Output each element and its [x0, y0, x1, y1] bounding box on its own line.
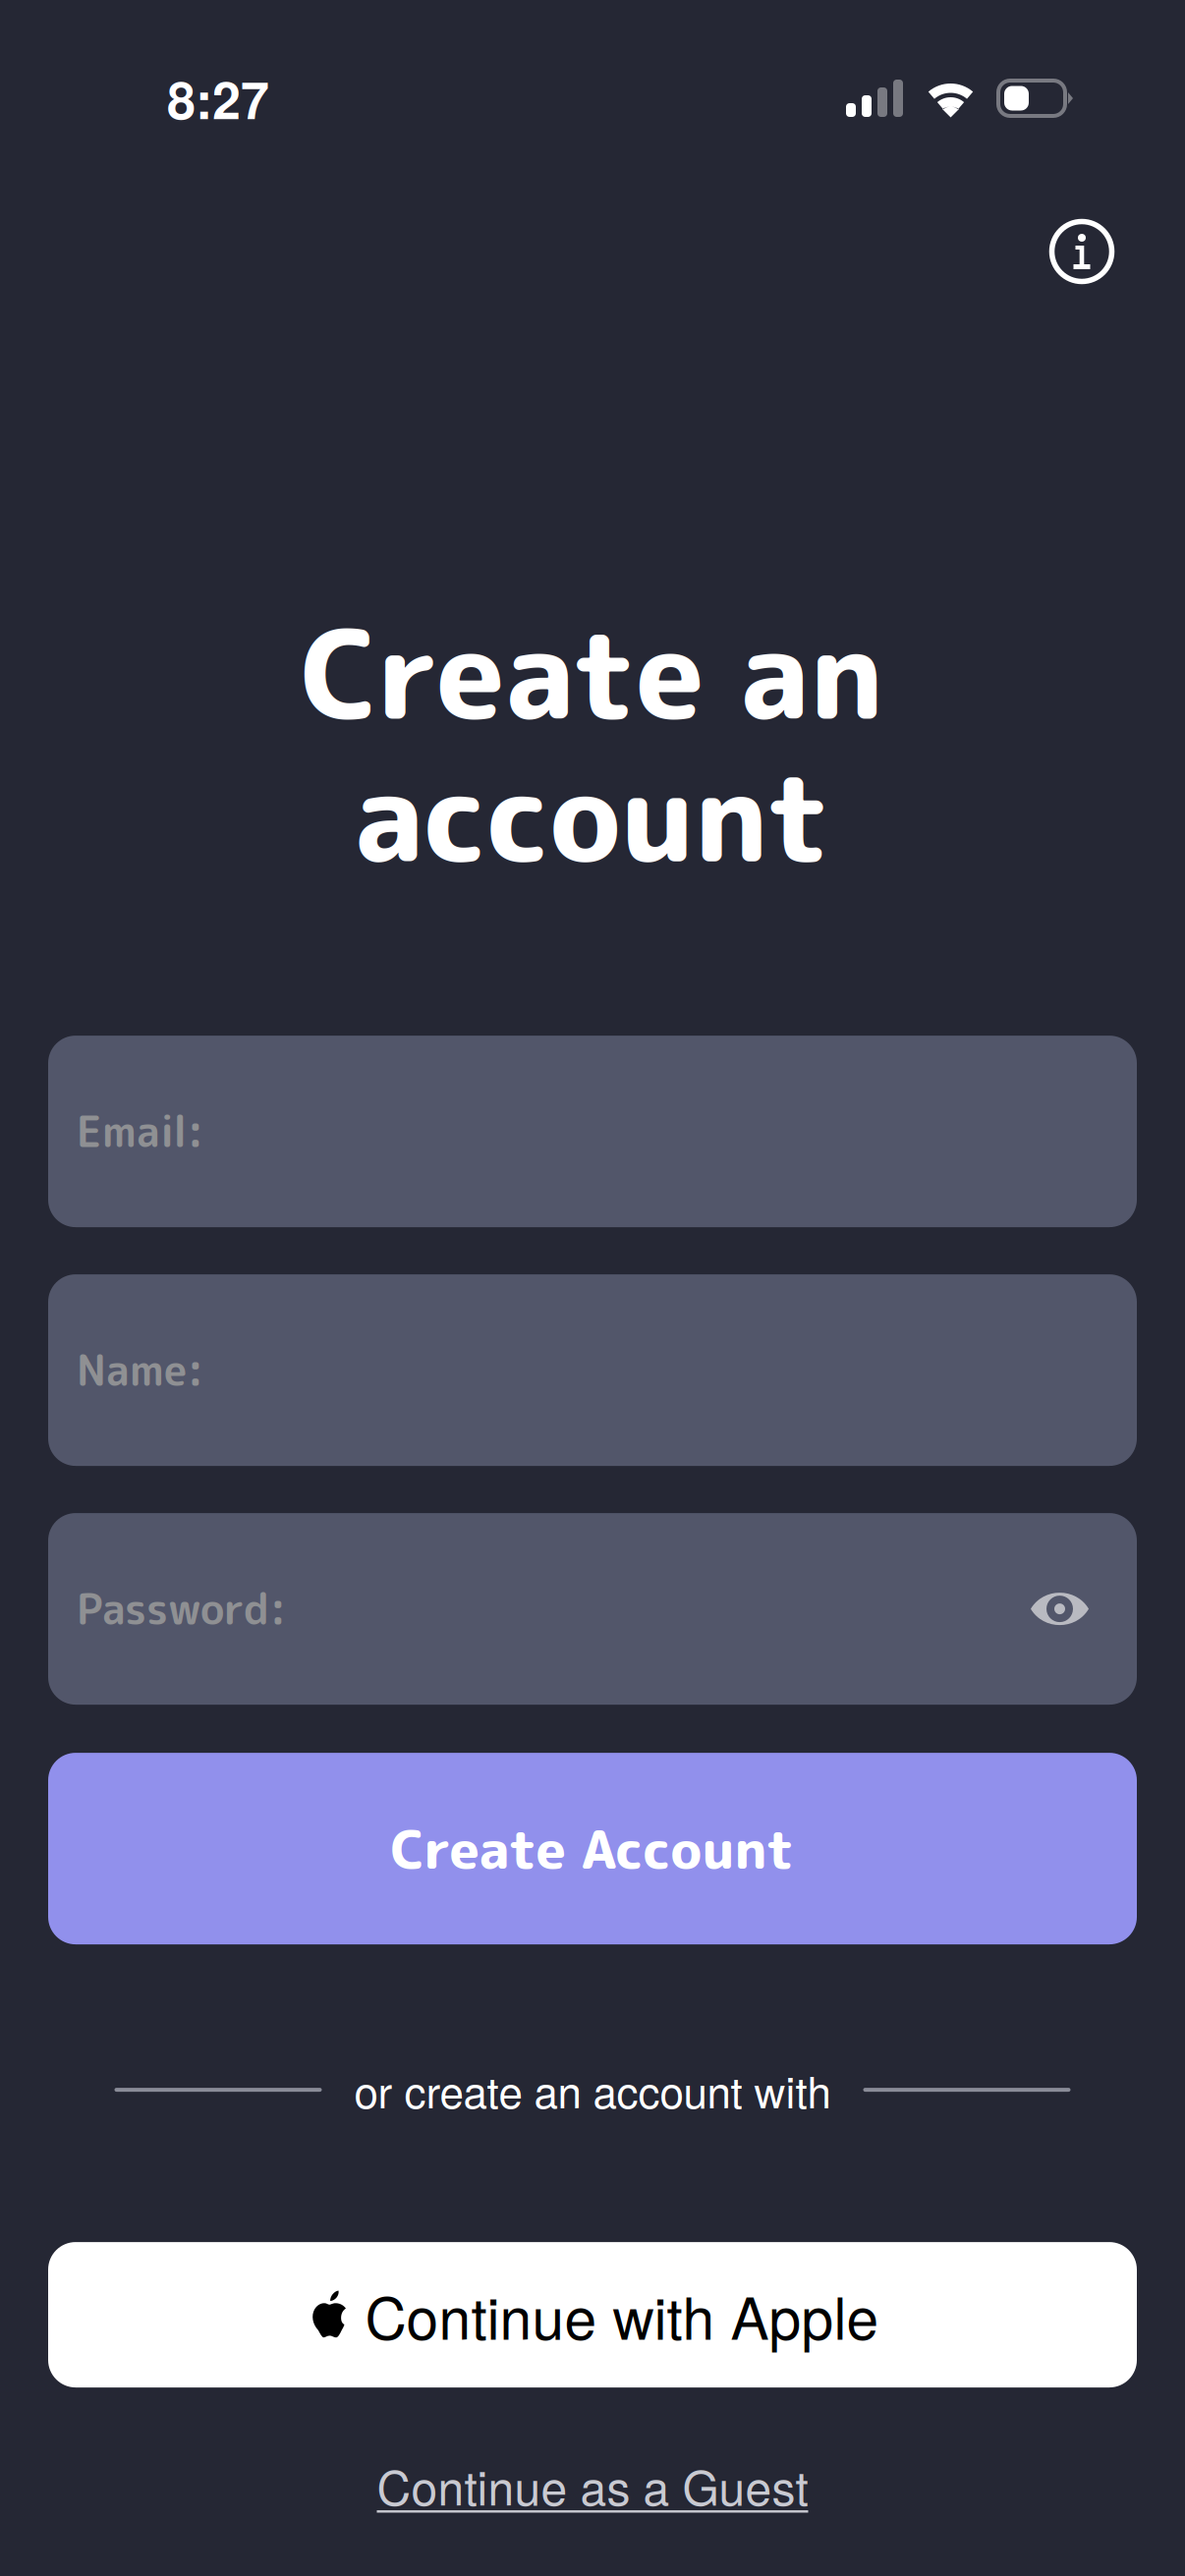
staticText: Create Account	[391, 1812, 794, 1886]
button[interactable]: Continue as a Guest	[377, 2451, 808, 2519]
staticText: 8:27	[167, 62, 269, 135]
staticText: Continue with Apple	[365, 2274, 879, 2356]
staticText: Create an	[301, 588, 884, 757]
staticText: Email:	[77, 1102, 204, 1160]
staticText: or create an account with	[354, 2059, 831, 2121]
button[interactable]: Continue with Apple	[48, 2242, 1137, 2387]
button[interactable]: Information	[1032, 201, 1132, 302]
staticText: Continue as a Guest	[377, 2451, 808, 2519]
staticText: Password:	[77, 1580, 287, 1638]
staticText: account	[354, 731, 831, 900]
button[interactable]: Create Account	[48, 1753, 1137, 1944]
staticText: Name:	[77, 1341, 204, 1399]
